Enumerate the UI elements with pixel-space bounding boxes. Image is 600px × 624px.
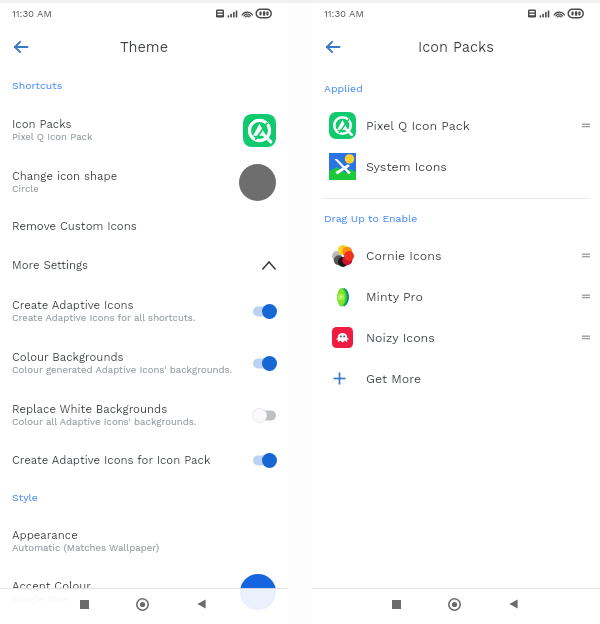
staticText: System Icons	[366, 159, 590, 174]
button[interactable]: Remove Custom Icons	[0, 208, 288, 245]
button[interactable]: Icon Packs	[0, 104, 288, 156]
button[interactable]: Replace White Backgrounds	[0, 389, 288, 441]
staticText: Create Adaptive Icons for all shortcuts.	[12, 312, 196, 323]
staticText: More Settings	[12, 258, 262, 271]
staticText: Minty Pro	[366, 289, 582, 304]
staticText: Pixel Q Icon Pack	[366, 118, 582, 133]
button[interactable]: Back	[189, 592, 213, 616]
staticText: Icon Packs	[418, 39, 494, 56]
staticText: Change icon shape	[12, 169, 118, 182]
staticText: Create Adaptive Icons for Icon Pack	[12, 453, 253, 466]
button[interactable]: Accent Colour	[0, 567, 288, 617]
button[interactable]: Create Adaptive Icons	[0, 285, 288, 337]
staticText: Drag Up to Enable	[324, 212, 418, 224]
button[interactable]: Back	[6, 32, 36, 62]
button[interactable]: Recents	[72, 592, 96, 616]
staticText: Circle	[12, 183, 39, 194]
staticText: Accent Colour	[12, 579, 92, 592]
staticText: 11:30 AM	[12, 8, 52, 19]
staticText: Appearance	[12, 528, 78, 541]
button[interactable]: Minty Pro	[312, 276, 600, 317]
button[interactable]: Home	[130, 592, 154, 616]
button[interactable]: Create Adaptive Icons for Icon Pack	[0, 441, 288, 479]
button[interactable]: Recents	[384, 592, 408, 616]
button[interactable]: Noizy Icons	[312, 317, 600, 358]
staticText: Theme	[120, 39, 168, 56]
staticText: Colour all Adaptive Icons' backgrounds.	[12, 416, 197, 427]
button[interactable]: Pixel Q Icon Pack	[312, 105, 600, 146]
button[interactable]: Change icon shape	[0, 156, 288, 208]
button[interactable]: Back	[318, 32, 348, 62]
staticText: Automatic (Matches Wallpaper)	[12, 542, 160, 553]
staticText: Style	[12, 491, 38, 503]
staticText: Shortcuts	[12, 79, 63, 91]
button[interactable]: Home	[442, 592, 466, 616]
staticText: Replace White Backgrounds	[12, 402, 168, 415]
button[interactable]: Back	[501, 592, 525, 616]
staticText: Get More	[366, 371, 422, 386]
staticText: Noizy Icons	[366, 330, 582, 345]
button[interactable]: More Settings	[0, 245, 288, 285]
staticText: Applied	[324, 82, 363, 94]
button[interactable]: Appearance	[0, 514, 288, 567]
staticText: Create Adaptive Icons	[12, 298, 134, 311]
button[interactable]: Cornie Icons	[312, 235, 600, 276]
button[interactable]: Colour Backgrounds	[0, 337, 288, 389]
button[interactable]: System Icons	[312, 146, 600, 187]
staticText: Cornie Icons	[366, 248, 582, 263]
staticText: Remove Custom Icons	[12, 219, 276, 232]
button[interactable]: Get More	[312, 358, 600, 399]
staticText: Colour generated Adaptive Icons' backgro…	[12, 364, 233, 375]
staticText: Icon Packs	[12, 117, 72, 130]
staticText: 11:30 AM	[324, 8, 364, 19]
staticText: Colour Backgrounds	[12, 350, 124, 363]
staticText: Pixel Q Icon Pack	[12, 131, 93, 142]
